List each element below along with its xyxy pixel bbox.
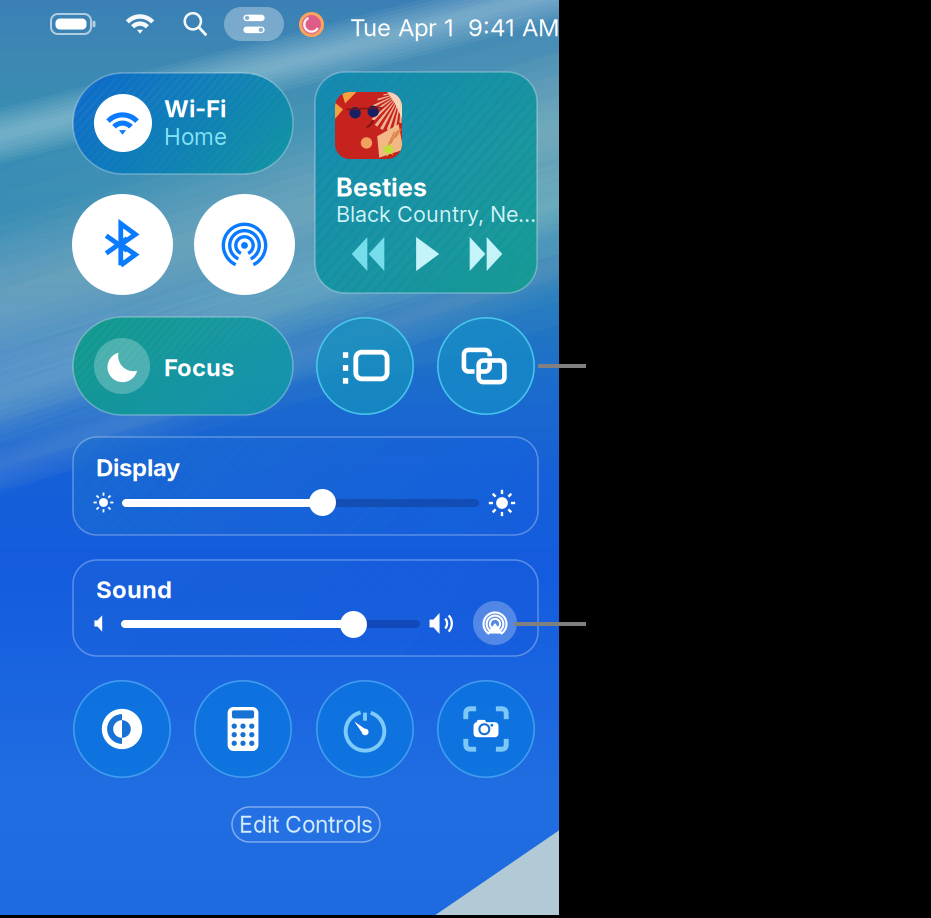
button[interactable]: Screenshot xyxy=(437,680,535,778)
staticText: Tue Apr 1 9:41 AM xyxy=(350,13,559,42)
button[interactable]: AirPlay output xyxy=(473,601,517,645)
button[interactable]: Wi-Fi xyxy=(120,9,160,39)
button[interactable]: Control Center xyxy=(224,7,284,41)
staticText: Focus xyxy=(164,353,234,382)
staticText: Wi-Fi xyxy=(164,94,226,123)
button[interactable]: Accessibility Display xyxy=(73,680,171,778)
button[interactable]: Screen Mirroring xyxy=(437,317,535,415)
button[interactable]: Focus xyxy=(73,317,293,415)
button[interactable]: Spotlight Search xyxy=(175,9,215,39)
staticText: Black Country, New… xyxy=(336,201,536,227)
button[interactable]: Fast forward xyxy=(461,233,511,275)
staticText: Sound xyxy=(96,575,172,604)
button[interactable]: Play xyxy=(402,233,452,275)
button[interactable]: Edit Controls xyxy=(232,807,380,842)
staticText: Home xyxy=(164,123,227,150)
staticText: Edit Controls xyxy=(239,811,373,838)
staticText: Display xyxy=(96,453,180,482)
button[interactable]: Rewind xyxy=(343,233,393,275)
button[interactable]: Calculator xyxy=(194,680,292,778)
button[interactable]: Timer xyxy=(316,680,414,778)
button[interactable]: Bluetooth xyxy=(72,194,173,295)
button[interactable]: Stage Manager xyxy=(316,317,414,415)
button[interactable]: AirDrop xyxy=(194,194,295,295)
button[interactable]: Wi-Fi xyxy=(73,73,293,174)
button[interactable]: Battery xyxy=(48,9,100,39)
staticText: Besties xyxy=(336,172,427,203)
button[interactable]: Siri xyxy=(299,12,324,37)
